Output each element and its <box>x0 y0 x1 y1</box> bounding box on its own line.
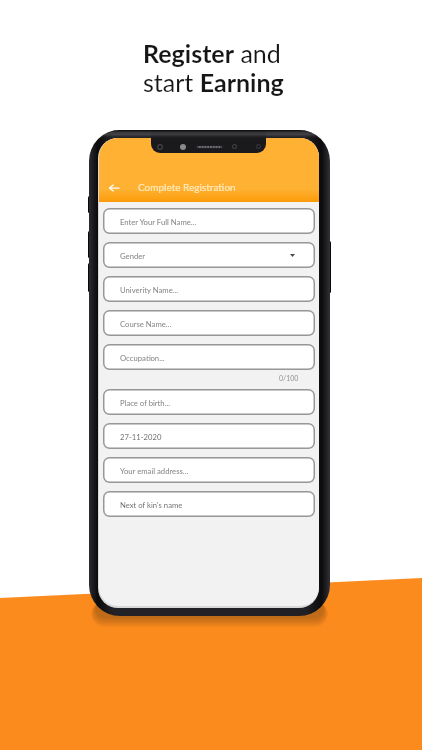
button[interactable]: Course Name... <box>103 310 315 336</box>
button[interactable]: Next of kin's name <box>103 491 315 517</box>
button[interactable]: Univerity Name... <box>103 276 315 302</box>
button[interactable]: Back <box>104 178 123 197</box>
staticText: Complete Registration <box>138 181 236 193</box>
staticText: Register and start Earning <box>143 38 284 97</box>
staticText: 27-11-2020 <box>120 432 162 441</box>
staticText: Enter Your Full Name... <box>120 217 197 226</box>
button[interactable]: Gender <box>103 242 315 268</box>
button[interactable]: 27-11-2020 <box>103 423 315 449</box>
button[interactable]: Enter Your Full Name... <box>103 208 315 234</box>
staticText: Univerity Name... <box>120 285 179 294</box>
button[interactable]: Occupation... <box>103 344 315 370</box>
staticText: Place of birth... <box>120 398 171 407</box>
button[interactable]: Your email address... <box>103 457 315 483</box>
staticText: 0/100 <box>279 374 299 382</box>
button[interactable]: Place of birth... <box>103 389 315 415</box>
staticText: Occupation... <box>120 353 165 362</box>
staticText: Gender <box>120 251 146 260</box>
staticText: Next of kin's name <box>120 500 183 509</box>
staticText: Your email address... <box>120 466 189 475</box>
staticText: Course Name... <box>120 319 172 328</box>
